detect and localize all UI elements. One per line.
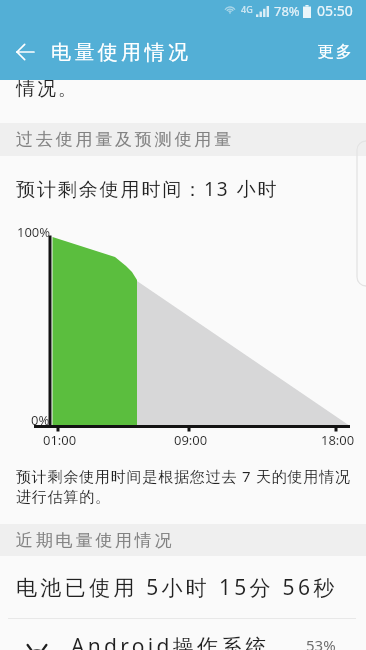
staticText: 09:00 [174,431,208,449]
staticText: 18:00 [321,431,355,449]
staticText: Android操作系统 [71,632,270,650]
staticText: 情况。 [16,77,79,101]
staticText: 过去使用量及预测使用量 [16,129,234,150]
button[interactable]: 过去使用量及预测使用量 [0,123,366,156]
staticText: 预计剩余使用时间：13 小时 [16,176,279,202]
button[interactable]: Android操作系统 [0,619,366,650]
button[interactable]: 更多 [303,28,366,76]
button[interactable]: 近期电量使用情况 [0,524,366,556]
staticText: 05:50 [317,1,353,20]
staticText: 78% [274,2,300,20]
staticText: 100% [17,223,51,241]
staticText: 01:00 [43,431,77,449]
staticText: 电池已使用 5小时 15分 56秒 [16,573,338,602]
staticText: 53% [306,635,336,650]
staticText: 预计剩余使用时间是根据您过去 7 天的使用情况 进行估算的。 [16,466,351,506]
staticText: 0% [31,411,50,429]
staticText: 电量使用情况 [51,40,192,65]
staticText: 近期电量使用情况 [16,530,175,551]
staticText: 4G [241,3,253,15]
staticText: 更多 [316,42,353,62]
button[interactable]: Back [6,33,44,71]
